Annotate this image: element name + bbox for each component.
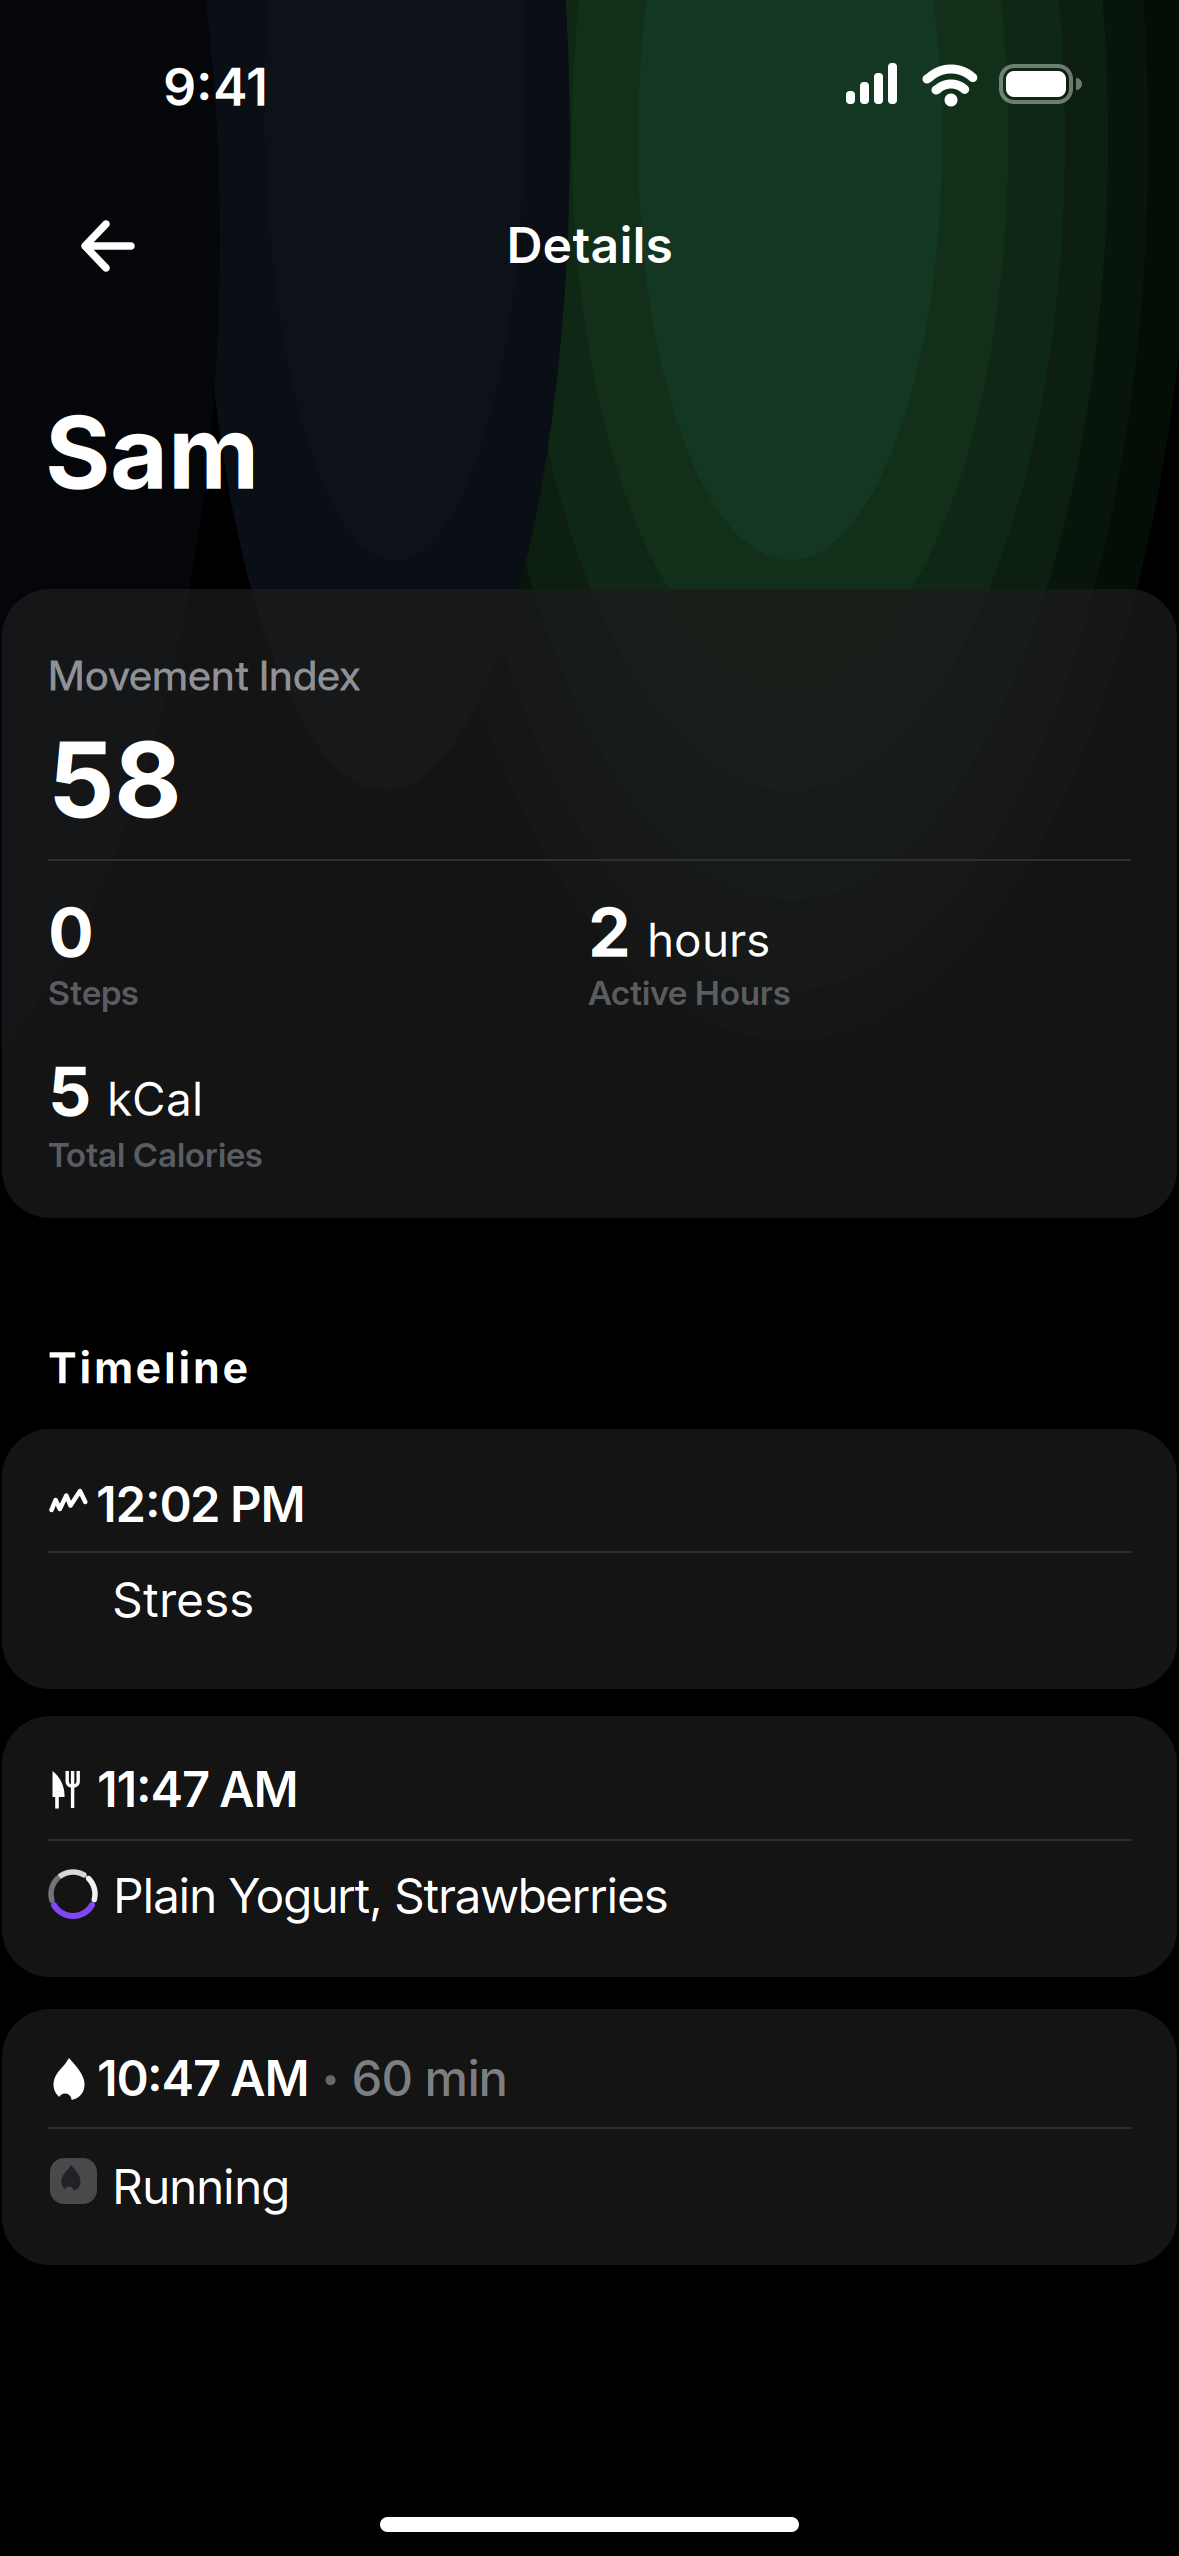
staticText: Stress [112, 1572, 254, 1627]
button[interactable]: 10:47 AM [2, 2009, 1177, 2265]
staticText: Sam [45, 395, 259, 510]
staticText: 2 [588, 893, 631, 971]
staticText: 11:47 AM [97, 1761, 298, 1817]
staticText: 12:02 PM [96, 1476, 305, 1532]
staticText: Total Calories [48, 1135, 263, 1174]
staticText: 10:47 AM [97, 2050, 309, 2106]
staticText: Movement Index [48, 651, 361, 699]
button[interactable]: 11:47 AM [2, 1716, 1177, 1977]
staticText: Details [506, 216, 672, 273]
staticText: 58 [48, 720, 182, 839]
staticText: Plain Yogurt, Strawberries [113, 1868, 668, 1923]
staticText: Active Hours [588, 973, 791, 1012]
button[interactable]: Movement Index [2, 589, 1177, 1218]
staticText: 9:41 [163, 57, 268, 117]
staticText: 5 [48, 1052, 91, 1130]
staticText: Running [112, 2159, 290, 2214]
staticText: 0 [48, 893, 94, 971]
button[interactable]: Back [64, 203, 152, 289]
staticText: kCal [107, 1073, 203, 1125]
staticText: Timeline [48, 1343, 248, 1392]
staticText: hours [647, 914, 770, 966]
button[interactable]: 12:02 PM [2, 1429, 1177, 1689]
staticText: 60 min [351, 2050, 507, 2106]
staticText: Steps [48, 973, 139, 1012]
